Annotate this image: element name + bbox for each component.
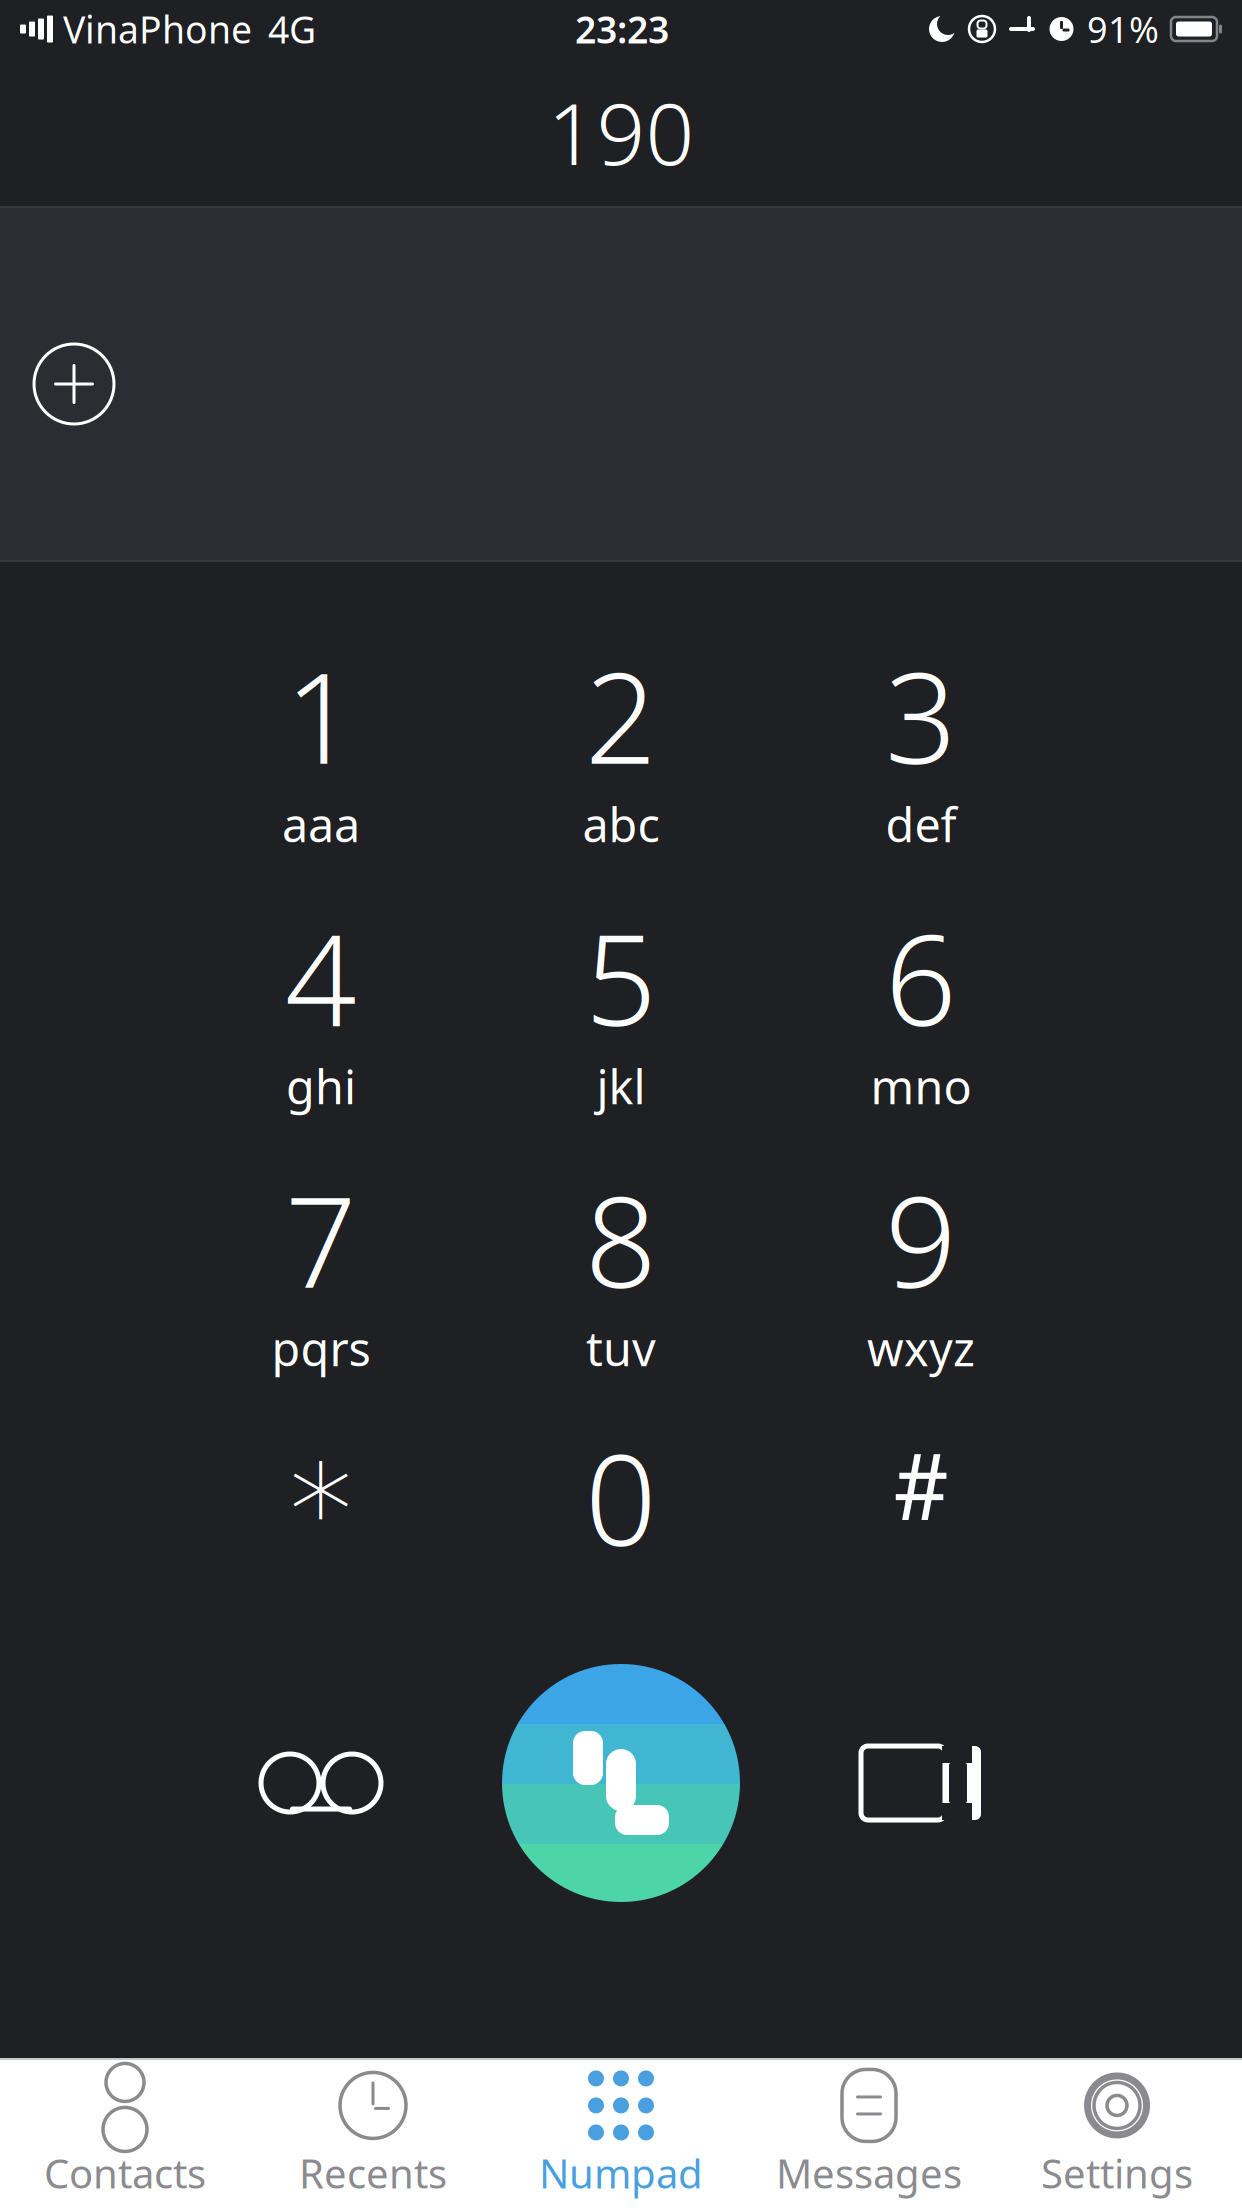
button[interactable]: 5	[471, 872, 771, 1134]
staticText: 7	[285, 1156, 357, 1322]
staticText: jkl	[596, 1055, 645, 1117]
button[interactable]: 3	[771, 610, 1071, 872]
button[interactable]: Add contact	[14, 324, 134, 444]
staticText: ∗	[281, 1413, 361, 1559]
staticText: 1	[285, 632, 357, 798]
button[interactable]: Video call	[771, 1658, 1071, 1908]
staticText: 4	[285, 894, 357, 1060]
staticText: 2	[585, 632, 657, 798]
staticText: Settings	[1041, 2146, 1193, 2199]
staticText: pqrs	[271, 1317, 370, 1379]
button[interactable]: 7	[171, 1134, 471, 1396]
button[interactable]: 8	[471, 1134, 771, 1396]
button[interactable]: 4	[171, 872, 471, 1134]
button[interactable]: Recents	[249, 2060, 497, 2208]
staticText: Messages	[776, 2146, 962, 2199]
button[interactable]: Voicemail	[171, 1658, 471, 1908]
staticText: mno	[870, 1055, 971, 1117]
button[interactable]: ∗	[171, 1396, 471, 1658]
staticText: Recents	[299, 2146, 447, 2199]
button[interactable]: 9	[771, 1134, 1071, 1396]
staticText: tuv	[586, 1317, 656, 1379]
staticText: 5	[585, 894, 657, 1060]
staticText: 190	[547, 75, 694, 189]
button[interactable]: 6	[771, 872, 1071, 1134]
button[interactable]: Messages	[745, 2060, 993, 2208]
staticText: wxyz	[867, 1317, 975, 1379]
staticText: Numpad	[539, 2146, 703, 2199]
button[interactable]: 2	[471, 610, 771, 872]
staticText: def	[885, 793, 956, 855]
staticText: abc	[582, 793, 659, 855]
staticText: ＃	[873, 1429, 969, 1547]
button[interactable]: Numpad	[497, 2060, 745, 2208]
button[interactable]: Call	[502, 1664, 740, 1902]
button[interactable]: 0	[471, 1396, 771, 1658]
button[interactable]: Contacts	[1, 2060, 249, 2208]
button[interactable]: ＃	[771, 1396, 1071, 1658]
staticText: 0	[585, 1414, 657, 1580]
button[interactable]: Settings	[993, 2060, 1241, 2208]
staticText: 6	[885, 894, 957, 1060]
staticText: 3	[885, 632, 957, 798]
staticText: VinaPhone	[63, 4, 252, 54]
staticText: 4G	[268, 4, 316, 54]
staticText: aaa	[282, 793, 360, 855]
staticText: 8	[585, 1156, 657, 1322]
staticText: 23:23	[575, 4, 669, 54]
button[interactable]: 1	[171, 610, 471, 872]
staticText: 91%	[1087, 5, 1159, 53]
staticText: 9	[885, 1156, 957, 1322]
staticText: Contacts	[44, 2146, 206, 2199]
staticText: ghi	[286, 1055, 356, 1117]
